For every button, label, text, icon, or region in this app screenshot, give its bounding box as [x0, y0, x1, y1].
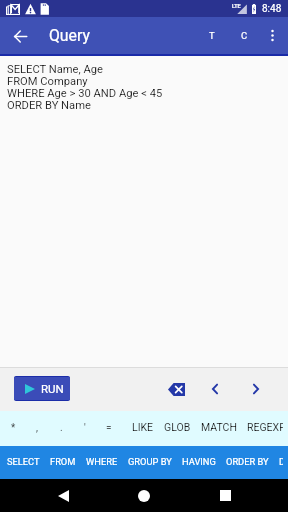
button[interactable]: HAVING [177, 446, 221, 479]
button[interactable]: GROUP BY [123, 446, 177, 479]
button[interactable]: Home [126, 479, 162, 512]
button[interactable]: = [97, 411, 121, 446]
staticText: HAVING [182, 456, 216, 467]
staticText: REGEXP [247, 421, 283, 433]
button[interactable]: WHERE [81, 446, 123, 479]
button[interactable]: Back [6, 22, 34, 50]
staticText: GLOB [164, 421, 191, 433]
staticText: DISTINCT [279, 456, 283, 467]
staticText: Query [49, 26, 90, 45]
button[interactable]: Previous [200, 376, 230, 402]
button[interactable]: Back [45, 479, 81, 512]
staticText: , [36, 422, 38, 434]
button[interactable]: GLOB [159, 411, 196, 446]
staticText: C [241, 30, 248, 41]
staticText: GROUP BY [128, 456, 172, 467]
staticText: SELECT Name, Age FROM Company WHERE Age … [7, 63, 163, 112]
button[interactable]: C [228, 17, 260, 54]
staticText: 8:48 [262, 3, 282, 15]
button[interactable]: FROM [45, 446, 81, 479]
button[interactable]: MATCH [196, 411, 242, 446]
staticText: . [60, 422, 63, 434]
staticText: T [209, 30, 215, 41]
button[interactable]: * [1, 411, 25, 446]
staticText: SELECT [7, 456, 40, 467]
button[interactable]: Recents [207, 479, 243, 512]
staticText: = [106, 422, 112, 434]
button[interactable]: RUN [14, 377, 70, 400]
button[interactable]: Backspace [160, 376, 190, 402]
button[interactable]: T [196, 17, 228, 54]
button[interactable]: . [49, 411, 73, 446]
button[interactable]: ' [73, 411, 97, 446]
staticText: LTE [232, 3, 241, 9]
staticText: RUN [41, 382, 64, 395]
button[interactable]: ORDER BY [221, 446, 274, 479]
button[interactable]: More options [260, 17, 284, 54]
button[interactable]: SELECT [2, 446, 45, 479]
button[interactable]: LIKE [127, 411, 159, 446]
button[interactable]: DISTINCT [274, 446, 288, 479]
staticText: MATCH [201, 421, 237, 433]
staticText: FROM [50, 456, 76, 467]
staticText: LIKE [132, 421, 154, 433]
staticText: ORDER BY [226, 456, 269, 467]
button[interactable]: Next [241, 376, 271, 402]
staticText: * [11, 422, 16, 434]
button[interactable]: , [25, 411, 49, 446]
staticText: ' [84, 422, 86, 434]
staticText: WHERE [86, 456, 118, 467]
button[interactable]: REGEXP [242, 411, 288, 446]
